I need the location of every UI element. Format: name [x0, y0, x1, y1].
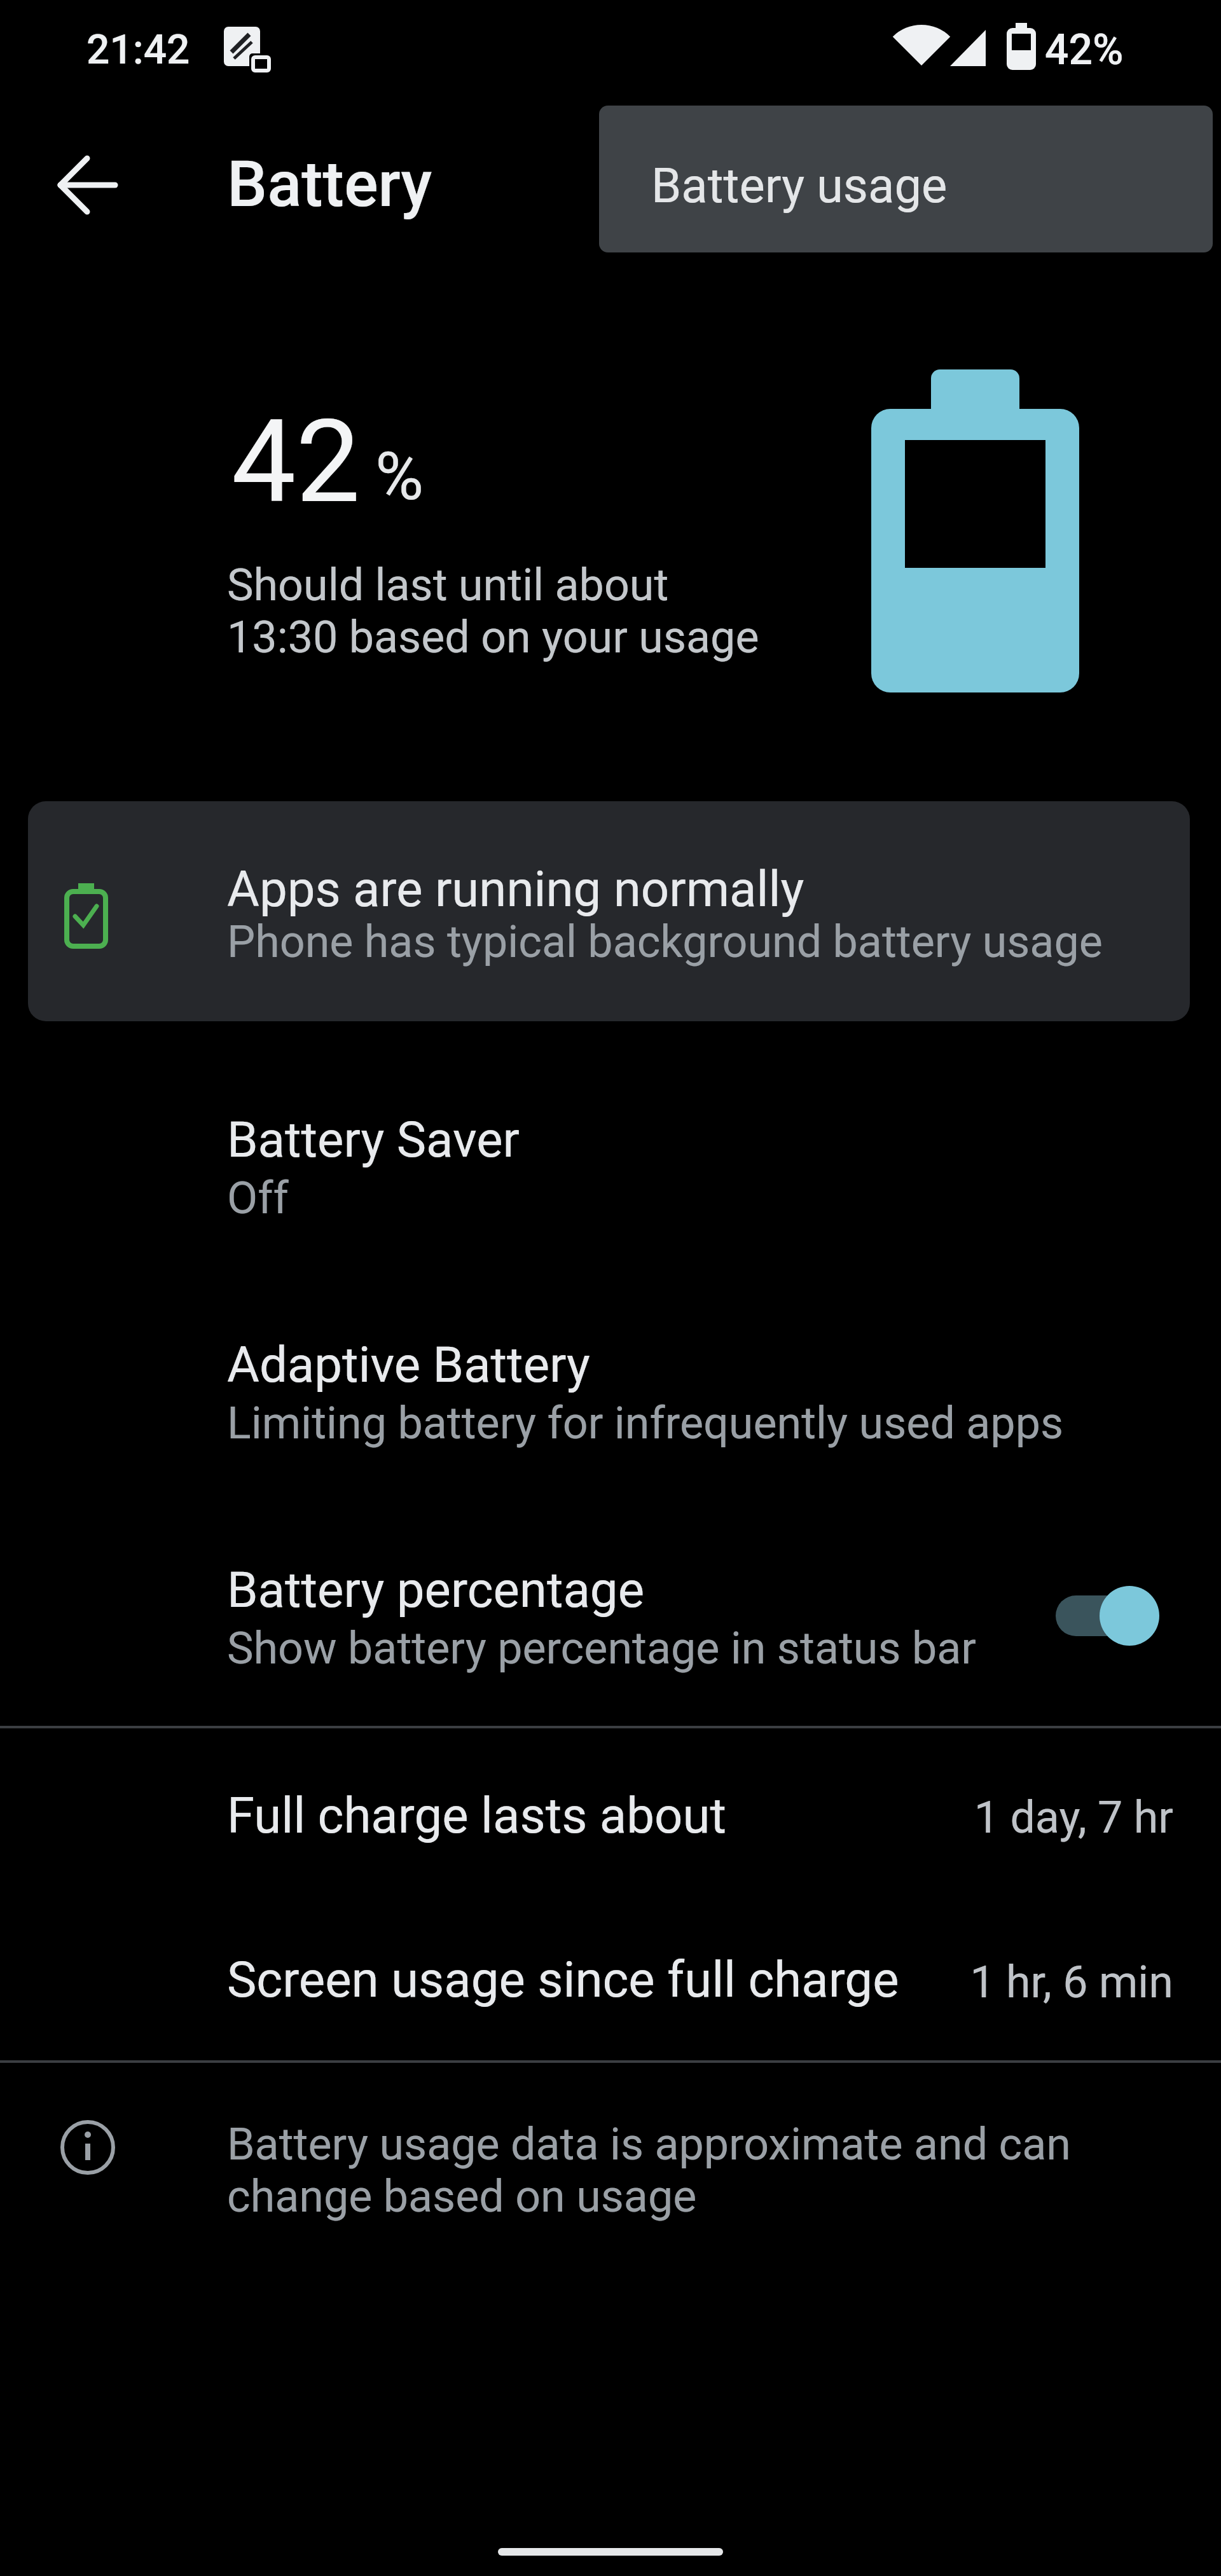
staticText: Apps are running normally	[227, 860, 804, 918]
button[interactable]: Battery usage	[599, 106, 1213, 252]
staticText: Battery	[227, 147, 432, 221]
button[interactable]: Battery Saver	[0, 1066, 1221, 1276]
staticText: 42	[231, 395, 361, 529]
button[interactable]	[36, 134, 138, 236]
staticText: Screen usage since full charge	[227, 1951, 899, 2009]
button[interactable]: Battery percentage	[0, 1517, 1221, 1726]
staticText: 42%	[1045, 25, 1124, 74]
staticText: Limiting battery for infrequently used a…	[227, 1397, 1064, 1449]
button[interactable]: Apps are running normally	[28, 801, 1190, 1021]
button[interactable]: Adaptive Battery	[0, 1291, 1221, 1501]
staticText: Adaptive Battery	[227, 1336, 591, 1394]
staticText: 1 day, 7 hr	[763, 1791, 1173, 1843]
staticText: Phone has typical background battery usa…	[227, 916, 1103, 968]
staticText: 1 hr, 6 min	[763, 1956, 1173, 2008]
button[interactable]: Full charge lasts about	[0, 1742, 1221, 1901]
staticText: Battery percentage	[227, 1561, 645, 1619]
button[interactable]: Screen usage since full charge	[0, 1906, 1221, 2065]
staticText: 21:42	[86, 26, 190, 74]
staticText: Battery usage data is approximate and ca…	[227, 2118, 1071, 2222]
staticText: Off	[227, 1172, 289, 1224]
staticText: Battery Saver	[227, 1111, 520, 1169]
button[interactable]	[1030, 1564, 1189, 1669]
staticText: %	[375, 438, 424, 516]
staticText: Battery usage	[651, 157, 948, 214]
staticText: Should last until about 13:30 based on y…	[227, 559, 759, 663]
staticText: Show battery percentage in status bar	[227, 1622, 977, 1674]
staticText: Full charge lasts about	[227, 1787, 726, 1845]
